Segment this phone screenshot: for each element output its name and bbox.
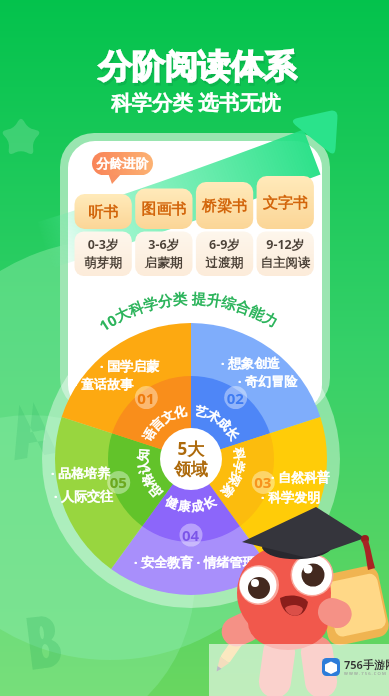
button[interactable]: 分阶阅读体系 科学分类 选书无忧 bbox=[0, 0, 389, 696]
